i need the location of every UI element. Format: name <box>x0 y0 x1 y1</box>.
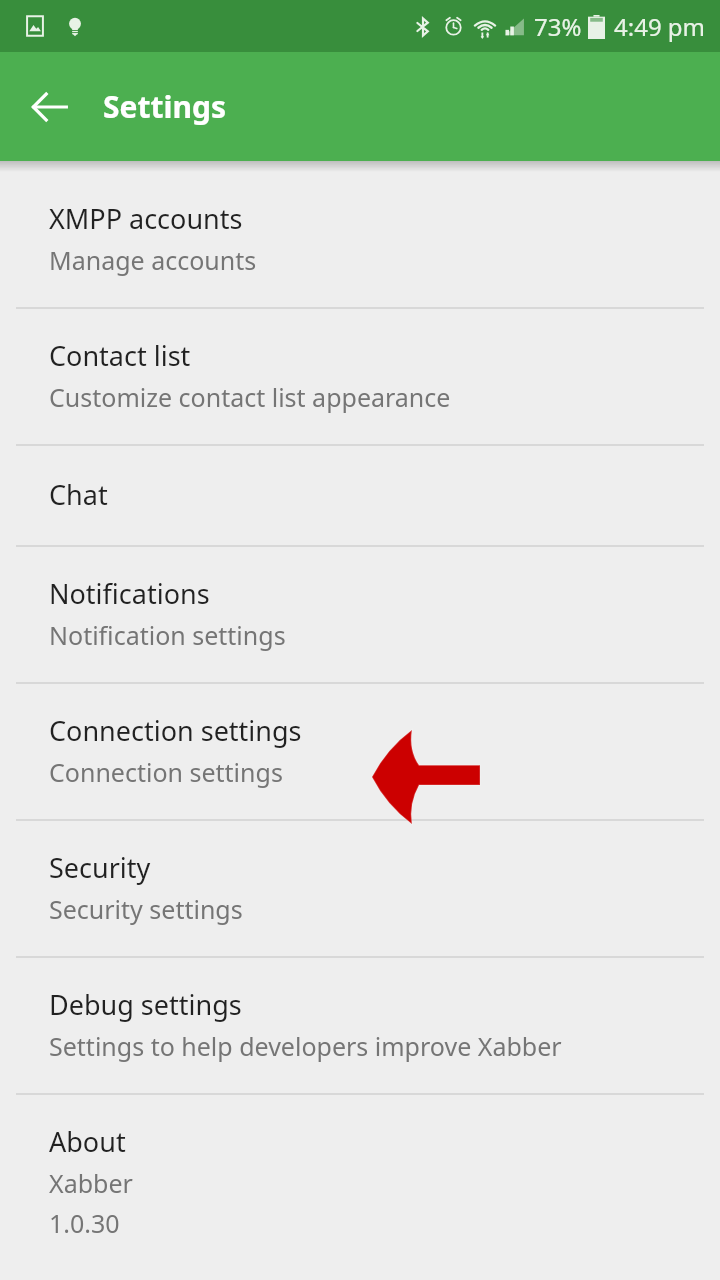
staticText: Xabber <box>49 1166 133 1200</box>
staticText: Customize contact list appearance <box>49 380 451 414</box>
staticText: 1.0.30 <box>49 1206 120 1240</box>
staticText: XMPP accounts <box>49 200 243 237</box>
staticText: Chat <box>49 476 108 513</box>
staticText: Settings to help developers improve Xabb… <box>49 1029 562 1063</box>
staticText: Debug settings <box>49 986 242 1023</box>
staticText: Security <box>49 849 151 886</box>
button[interactable]: Chat <box>0 446 720 545</box>
staticText: Contact list <box>49 337 191 374</box>
button[interactable]: About <box>0 1095 720 1270</box>
button[interactable]: Back <box>20 77 80 137</box>
button[interactable]: Security <box>0 821 720 956</box>
button[interactable]: Notifications <box>0 547 720 682</box>
button[interactable]: Debug settings <box>0 958 720 1093</box>
staticText: Manage accounts <box>49 243 257 277</box>
staticText: Security settings <box>49 892 243 926</box>
button[interactable]: XMPP accounts <box>0 172 720 307</box>
button[interactable]: Contact list <box>0 309 720 444</box>
staticText: Notification settings <box>49 618 286 652</box>
staticText: Connection settings <box>49 712 302 749</box>
staticText: Settings <box>103 86 226 127</box>
staticText: About <box>49 1123 126 1160</box>
button[interactable]: Connection settings <box>0 684 720 819</box>
staticText: Connection settings <box>49 755 283 789</box>
staticText: 73% <box>534 10 582 43</box>
staticText: 4:49 pm <box>614 10 706 43</box>
staticText: Notifications <box>49 575 210 612</box>
